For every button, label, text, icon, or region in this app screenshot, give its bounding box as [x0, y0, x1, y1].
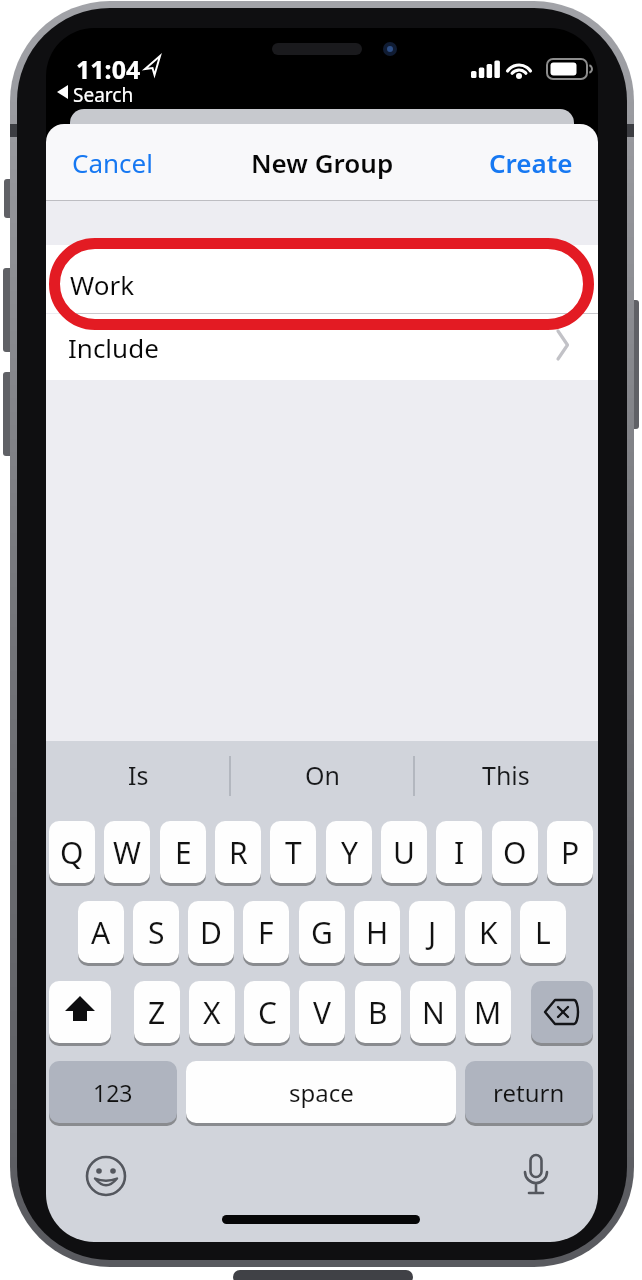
- staticText: X: [203, 992, 221, 1033]
- button[interactable]: V: [299, 981, 345, 1043]
- button[interactable]: space: [186, 1061, 456, 1123]
- button[interactable]: Create: [398, 124, 598, 201]
- button[interactable]: Cancel: [46, 124, 246, 201]
- staticText: H: [366, 912, 389, 953]
- button[interactable]: L: [520, 901, 566, 963]
- staticText: Z: [148, 992, 166, 1033]
- staticText: Q: [60, 832, 84, 873]
- staticText: I: [454, 832, 465, 873]
- staticText: F: [258, 912, 274, 953]
- button[interactable]: D: [188, 901, 234, 963]
- button[interactable]: X: [189, 981, 235, 1043]
- staticText: J: [428, 912, 437, 953]
- button[interactable]: F: [243, 901, 289, 963]
- staticText: 11:04: [76, 52, 141, 86]
- button[interactable]: E: [160, 821, 206, 883]
- staticText: Search: [73, 82, 134, 108]
- button[interactable]: [506, 1146, 566, 1206]
- staticText: T: [285, 832, 302, 873]
- staticText: G: [311, 912, 333, 953]
- button[interactable]: 123: [49, 1061, 177, 1123]
- staticText: Y: [341, 832, 358, 873]
- staticText: Include: [68, 330, 159, 365]
- button[interactable]: C: [244, 981, 290, 1043]
- button[interactable]: On: [230, 750, 414, 800]
- button[interactable]: H: [354, 901, 400, 963]
- button[interactable]: U: [381, 821, 427, 883]
- staticText: W: [113, 832, 141, 873]
- button[interactable]: Y: [326, 821, 372, 883]
- button[interactable]: K: [465, 901, 511, 963]
- staticText: P: [561, 832, 580, 873]
- button[interactable]: return: [465, 1061, 593, 1123]
- staticText: Cancel: [72, 145, 153, 180]
- staticText: A: [91, 912, 111, 953]
- staticText: This: [482, 758, 530, 792]
- button[interactable]: [76, 1146, 136, 1206]
- staticText: return: [493, 1076, 565, 1109]
- staticText: Work: [70, 267, 135, 302]
- button[interactable]: Is: [46, 750, 230, 800]
- staticText: 123: [93, 1077, 133, 1108]
- staticText: S: [148, 912, 165, 953]
- button[interactable]: Z: [134, 981, 180, 1043]
- button[interactable]: J: [409, 901, 455, 963]
- button[interactable]: I: [436, 821, 482, 883]
- staticText: N: [422, 992, 445, 1033]
- staticText: New Group: [251, 145, 394, 180]
- button[interactable]: [49, 981, 111, 1043]
- button[interactable]: N: [410, 981, 456, 1043]
- button[interactable]: T: [270, 821, 316, 883]
- staticText: Create: [489, 145, 573, 180]
- staticText: M: [474, 992, 502, 1033]
- button[interactable]: Include: [46, 314, 598, 380]
- staticText: U: [393, 832, 415, 873]
- button[interactable]: R: [215, 821, 261, 883]
- staticText: space: [289, 1076, 354, 1109]
- button[interactable]: B: [355, 981, 401, 1043]
- button[interactable]: G: [299, 901, 345, 963]
- staticText: D: [200, 912, 222, 953]
- staticText: O: [503, 832, 527, 873]
- button[interactable]: [531, 981, 593, 1043]
- staticText: E: [175, 832, 192, 873]
- staticText: V: [313, 992, 331, 1033]
- staticText: R: [229, 832, 248, 873]
- staticText: On: [305, 758, 340, 792]
- button[interactable]: A: [78, 901, 124, 963]
- staticText: B: [368, 992, 388, 1033]
- staticText: Is: [128, 758, 149, 792]
- button[interactable]: This: [414, 750, 598, 800]
- staticText: L: [535, 912, 551, 953]
- button[interactable]: Work: [46, 245, 598, 313]
- button[interactable]: S: [133, 901, 179, 963]
- button[interactable]: O: [492, 821, 538, 883]
- button[interactable]: W: [104, 821, 150, 883]
- button[interactable]: P: [547, 821, 593, 883]
- button[interactable]: M: [465, 981, 511, 1043]
- staticText: C: [258, 992, 277, 1033]
- staticText: K: [479, 912, 498, 953]
- button[interactable]: Q: [49, 821, 95, 883]
